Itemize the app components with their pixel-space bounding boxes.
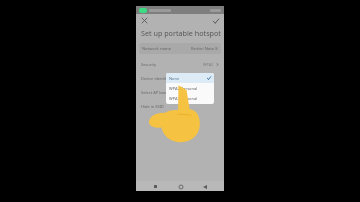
button[interactable]: Recents: [151, 182, 160, 191]
button[interactable]: Hide in SSID: [141, 102, 219, 111]
staticText: Network name: [142, 46, 172, 52]
staticText: Security: [141, 62, 157, 67]
button[interactable]: Back: [200, 182, 209, 191]
staticText: None: [169, 76, 180, 81]
staticText: Hide in SSID: [141, 104, 164, 109]
button[interactable]: WPA2 Personal: [166, 83, 214, 93]
button[interactable]: None: [166, 73, 214, 83]
button[interactable]: Security: [141, 60, 219, 69]
staticText: Device identification: [141, 76, 180, 81]
button[interactable]: Select AP band: [141, 88, 219, 97]
staticText: Set up portable hotspot: [141, 28, 221, 38]
button[interactable]: Close: [140, 16, 149, 25]
staticText: Redmi Note 8: [191, 46, 218, 52]
staticText: WPA3 Personal: [169, 96, 198, 101]
staticText: Select AP band: [141, 90, 169, 95]
button[interactable]: WPA3 Personal: [166, 93, 214, 103]
staticText: WPA2: [203, 62, 214, 67]
button[interactable]: Network name: [139, 43, 221, 54]
staticText: WPA2 Personal: [169, 86, 198, 91]
button[interactable]: Save: [211, 16, 220, 25]
button[interactable]: Home: [176, 182, 185, 191]
button[interactable]: Device identification: [141, 74, 219, 83]
